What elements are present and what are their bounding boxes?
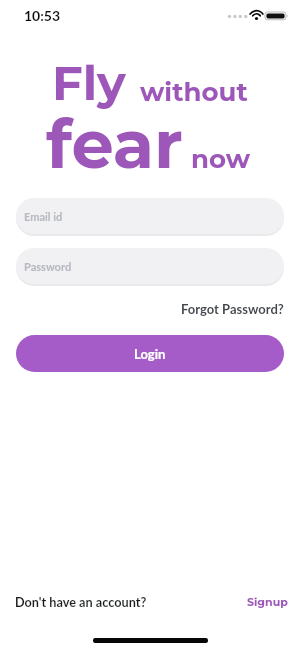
staticText: Password xyxy=(24,260,72,273)
button[interactable]: Email id xyxy=(16,198,284,234)
staticText: Signup xyxy=(247,595,288,608)
staticText: Don't have an account? xyxy=(15,594,147,609)
staticText: without xyxy=(140,76,248,108)
staticText: Email id xyxy=(24,210,63,223)
staticText: Forgot Password? xyxy=(181,301,284,317)
staticText: Login xyxy=(134,346,166,362)
button[interactable]: Forgot Password? xyxy=(181,301,284,317)
staticText: 10:53 xyxy=(24,7,61,24)
button[interactable]: Signup xyxy=(247,595,288,608)
button[interactable]: Login xyxy=(16,335,284,372)
staticText: fear xyxy=(46,103,183,185)
button[interactable]: Password xyxy=(16,248,284,284)
staticText: now xyxy=(191,143,251,175)
staticText: Fly xyxy=(52,54,126,113)
